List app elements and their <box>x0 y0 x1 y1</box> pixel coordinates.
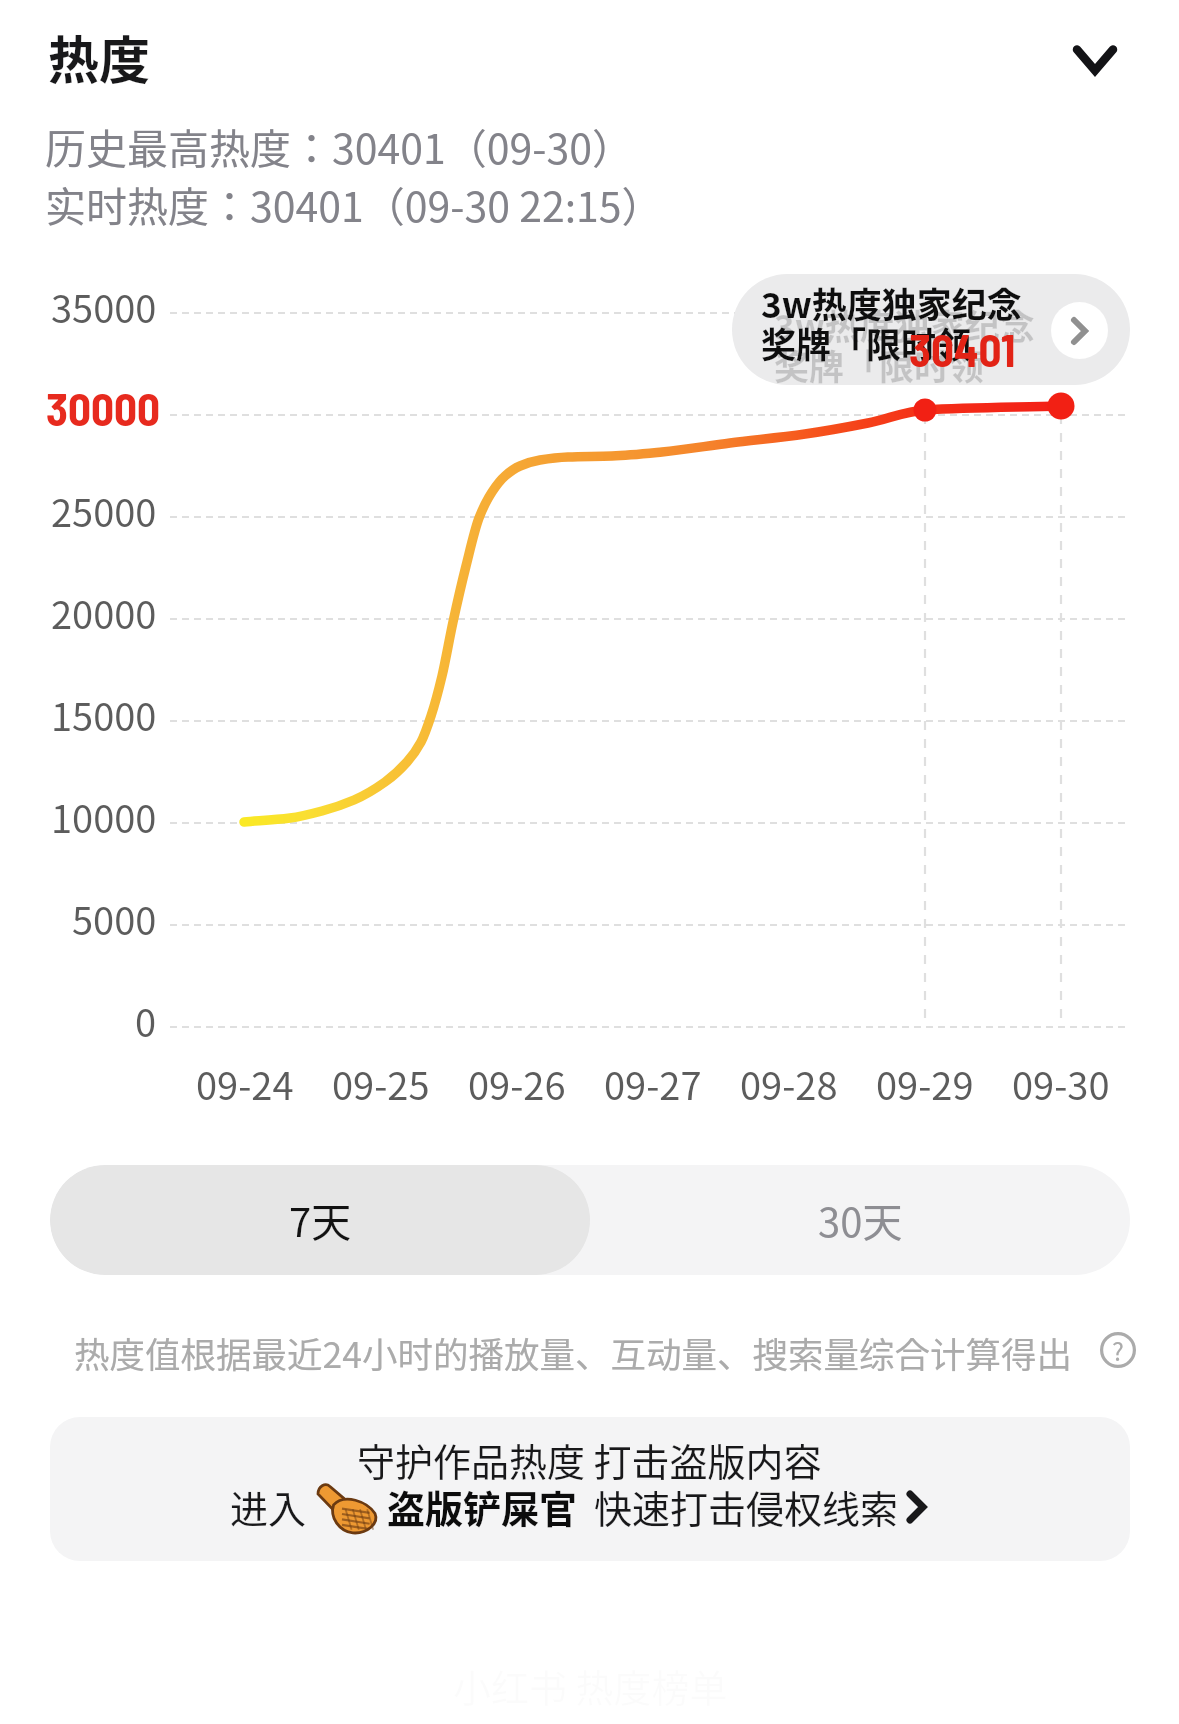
button[interactable]: Help <box>1099 1331 1137 1369</box>
staticText: 09-30 <box>1012 1056 1110 1111</box>
button[interactable]: 3w热度独家纪念 <box>732 274 1130 385</box>
button[interactable]: 7天 <box>50 1165 590 1275</box>
staticText: 历史最高热度：30401（09-30） <box>45 116 634 175</box>
staticText: 5000 <box>72 891 157 946</box>
staticText: 20000 <box>51 585 157 640</box>
staticText: 09-24 <box>196 1056 294 1111</box>
staticText: 09-29 <box>876 1056 974 1111</box>
staticText: 35000 <box>51 279 157 334</box>
staticText: 守护作品热度 打击盗版内容 <box>357 1432 822 1487</box>
staticText: 进入 <box>230 1479 307 1534</box>
staticText: 15000 <box>51 687 157 742</box>
staticText: 30401 <box>909 322 1016 376</box>
staticText: 7天 <box>289 1191 352 1249</box>
staticText: 09-26 <box>468 1056 566 1111</box>
staticText: 奖牌「限时领 <box>761 317 972 368</box>
staticText: 3w热度独家纪念 <box>774 299 1035 350</box>
staticText: 盗版铲屎官 <box>387 1479 578 1534</box>
button[interactable]: 守护作品热度 打击盗版内容 <box>50 1417 1130 1561</box>
button[interactable]: Collapse <box>1048 14 1142 106</box>
staticText: 实时热度：30401（09-30 22:15） <box>45 174 663 233</box>
staticText: 09-25 <box>332 1056 430 1111</box>
staticText: 09-28 <box>740 1056 838 1111</box>
staticText: 3w热度独家纪念 <box>761 277 1022 328</box>
staticText: 热度 <box>48 20 151 94</box>
staticText: 30000 <box>46 381 160 435</box>
staticText: 0 <box>135 993 157 1048</box>
staticText: 奖牌「限时领 <box>774 339 985 385</box>
button[interactable]: Open reward <box>1051 302 1108 359</box>
staticText: 30天 <box>818 1191 903 1249</box>
staticText: 快速打击侵权线索 <box>594 1479 899 1534</box>
staticText: 10000 <box>51 789 157 844</box>
staticText: ? <box>1112 1332 1124 1368</box>
staticText: 09-27 <box>604 1056 702 1111</box>
button[interactable]: 30天 <box>590 1165 1130 1275</box>
staticText: 25000 <box>51 483 157 538</box>
staticText: 热度值根据最近24小时的播放量、互动量、搜索量综合计算得出 <box>74 1327 1072 1373</box>
